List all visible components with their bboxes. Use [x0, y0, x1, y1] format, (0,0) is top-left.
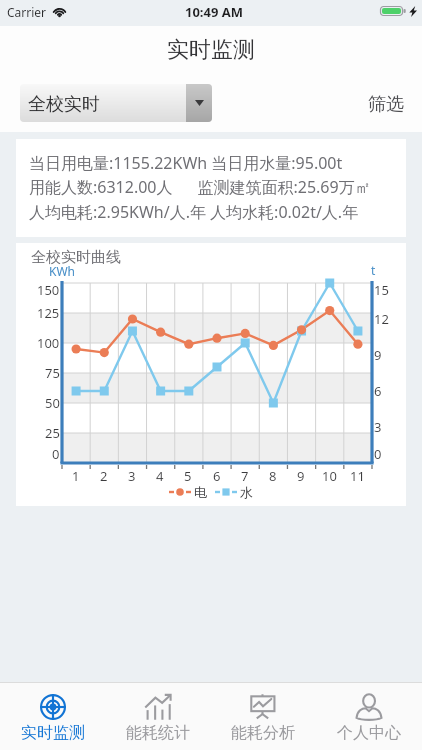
staticText: 3 [374, 418, 382, 436]
staticText: 2 [100, 467, 108, 485]
staticText: 电 [194, 484, 207, 500]
staticText: 7 [241, 467, 249, 485]
staticText: 0 [52, 445, 60, 463]
button[interactable]: 能耗统计 [105, 683, 210, 750]
button[interactable]: 个人中心 [316, 683, 422, 750]
staticText: 6 [213, 467, 221, 485]
staticText: 水 [240, 484, 253, 500]
staticText: 125 [37, 304, 60, 322]
staticText: 15 [374, 281, 389, 299]
staticText: 50 [45, 394, 60, 412]
staticText: 1 [72, 467, 80, 485]
staticText: 用能人数:6312.00人 监测建筑面积:25.69万㎡ [29, 176, 371, 198]
staticText: 150 [37, 281, 60, 299]
staticText: 12 [374, 310, 389, 328]
staticText: 筛选 [368, 93, 404, 116]
staticText: 能耗分析 [231, 723, 295, 743]
staticText: 11 [350, 467, 365, 485]
staticText: t [371, 262, 376, 278]
staticText: 能耗统计 [126, 723, 190, 743]
staticText: 个人中心 [337, 723, 401, 743]
staticText: 当日用电量:1155.22KWh 当日用水量:95.00t [29, 152, 343, 174]
button[interactable]: 全校实时 [20, 84, 212, 122]
staticText: KWh [49, 263, 76, 279]
button[interactable]: 能耗分析 [210, 683, 316, 750]
staticText: 9 [297, 467, 305, 485]
staticText: 0 [374, 445, 382, 463]
staticText: 3 [128, 467, 136, 485]
button[interactable]: 筛选 [366, 85, 406, 124]
staticText: 10 [322, 467, 337, 485]
staticText: 9 [374, 346, 382, 364]
staticText: 8 [269, 467, 277, 485]
staticText: 75 [45, 364, 60, 382]
staticText: 10:49 AM [185, 3, 244, 21]
staticText: 全校实时 [28, 93, 100, 116]
staticText: 人均电耗:2.95KWh/人.年 人均水耗:0.02t/人.年 [29, 201, 359, 223]
staticText: 全校实时曲线 [31, 248, 121, 267]
staticText: 5 [184, 467, 192, 485]
staticText: Carrier [7, 4, 47, 20]
staticText: 实时监测 [167, 36, 255, 64]
staticText: 100 [37, 334, 60, 352]
staticText: 25 [45, 424, 60, 442]
staticText: 实时监测 [21, 723, 85, 743]
staticText: 6 [374, 382, 382, 400]
button[interactable]: 实时监测 [0, 683, 105, 750]
staticText: 4 [156, 467, 164, 485]
